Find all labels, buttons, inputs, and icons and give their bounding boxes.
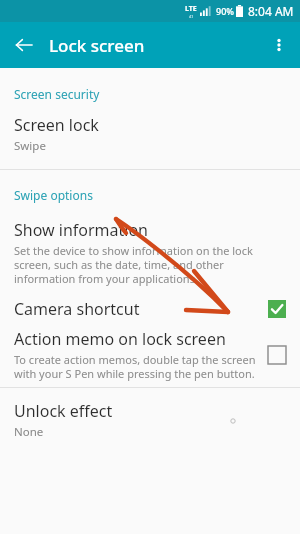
button[interactable]: Action memo on lock screen <box>0 328 300 381</box>
staticText: LTE <box>185 4 197 14</box>
button[interactable]: Show information <box>0 219 300 286</box>
button[interactable]: Back <box>8 29 40 61</box>
staticText: Show information <box>14 219 148 241</box>
staticText: Screen security <box>14 86 100 102</box>
button[interactable]: Unlock effect <box>0 400 300 440</box>
staticText: Unlock effect <box>14 400 113 422</box>
button[interactable]: Camera shortcut <box>0 298 300 320</box>
staticText: 90% <box>216 5 234 17</box>
staticText: Lock screen <box>49 34 145 57</box>
staticText: Set the device to show information on th… <box>14 243 286 286</box>
staticText: Swipe <box>14 138 46 154</box>
staticText: None <box>14 424 44 440</box>
staticText: To create action memos, double tap the s… <box>14 352 262 381</box>
staticText: 8:04 AM <box>248 3 294 19</box>
staticText: Swipe options <box>14 187 93 203</box>
button[interactable]: More options <box>262 28 296 62</box>
staticText: Action memo on lock screen <box>14 328 226 350</box>
staticText: 41 <box>189 14 194 19</box>
staticText: Camera shortcut <box>14 298 268 320</box>
button[interactable]: Screen lock <box>0 114 300 154</box>
staticText: Screen lock <box>14 114 99 136</box>
